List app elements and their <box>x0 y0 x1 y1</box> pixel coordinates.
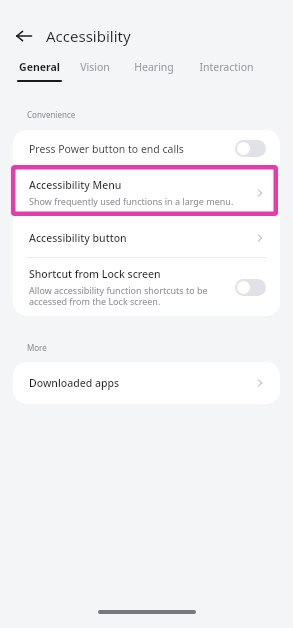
staticText: Accessibility button <box>29 231 254 245</box>
staticText: Accessibility Menu <box>29 178 122 192</box>
staticText: Shortcut from Lock screen <box>29 267 161 281</box>
button[interactable]: General <box>10 56 68 92</box>
staticText: Interaction <box>199 60 254 74</box>
staticText: Downloaded apps <box>29 376 254 390</box>
staticText: Hearing <box>134 60 174 74</box>
button[interactable]: Accessibility button <box>13 218 280 257</box>
staticText: Show frequently used functions in a larg… <box>29 195 234 207</box>
staticText: Vision <box>80 60 110 74</box>
staticText: More <box>27 342 47 353</box>
button[interactable]: Press Power button to end calls <box>13 130 280 167</box>
staticText: Accessibility <box>46 26 131 46</box>
button[interactable]: Toggle <box>235 279 266 296</box>
button[interactable]: Downloaded apps <box>13 362 280 404</box>
button[interactable]: Back <box>8 20 40 52</box>
staticText: Press Power button to end calls <box>29 142 235 156</box>
button[interactable]: Accessibility Menu <box>13 167 280 218</box>
button[interactable]: Hearing <box>122 56 186 92</box>
staticText: General <box>19 60 60 74</box>
button[interactable]: Interaction <box>186 56 266 92</box>
staticText: Allow accessibility function shortcuts t… <box>29 284 208 308</box>
staticText: Convenience <box>27 109 76 120</box>
button[interactable]: Toggle <box>235 140 266 157</box>
button[interactable]: Vision <box>68 56 122 92</box>
button[interactable]: Shortcut from Lock screen <box>13 258 280 316</box>
